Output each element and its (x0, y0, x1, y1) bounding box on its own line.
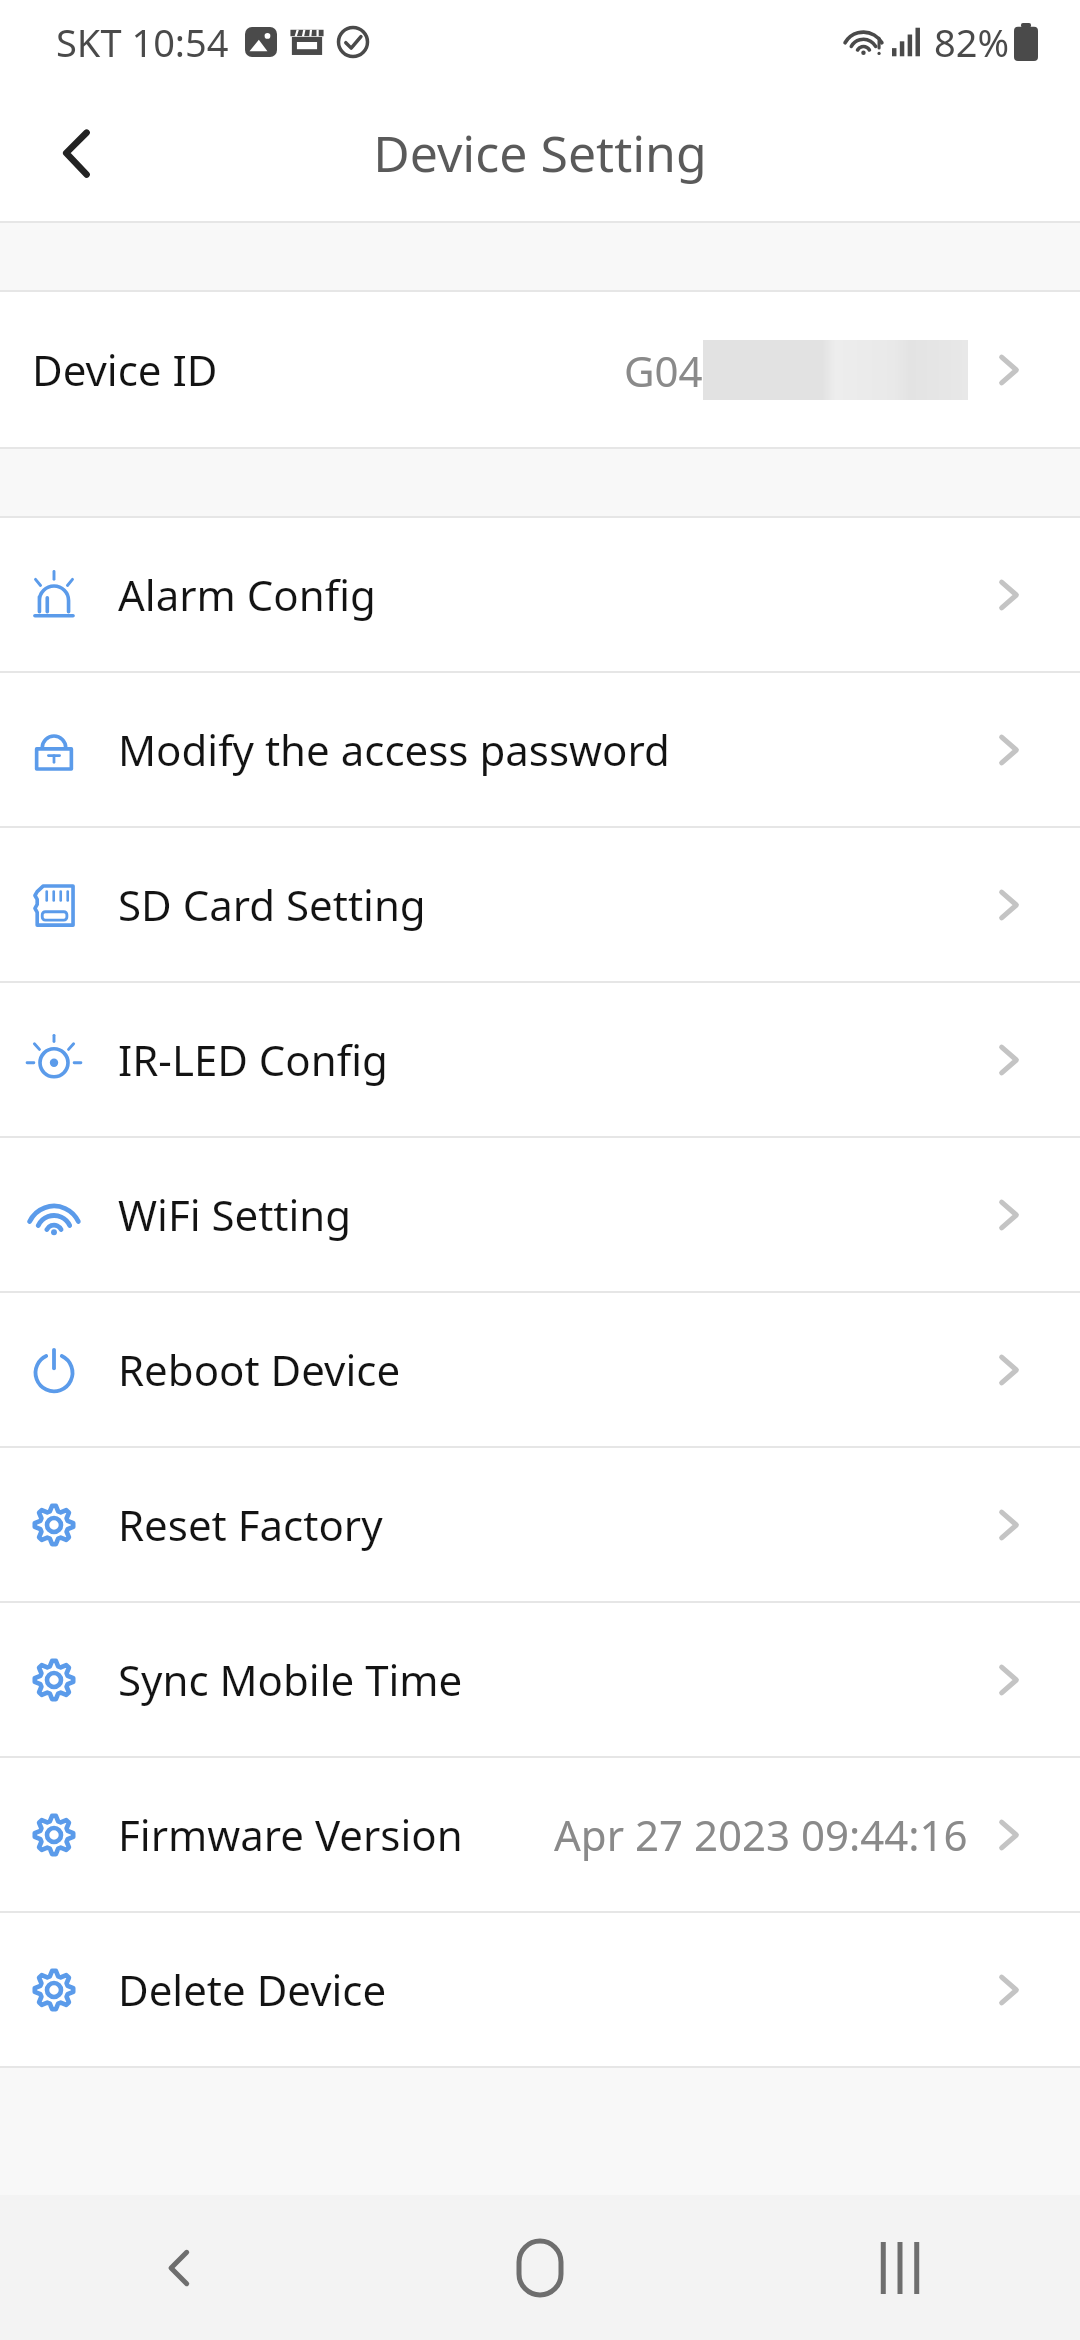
staticText: Device ID (32, 341, 218, 398)
staticText: Apr 27 2023 09:44:16 (554, 1806, 968, 1863)
button[interactable]: Device ID (0, 292, 1080, 447)
button[interactable]: Reset Factory (0, 1448, 1080, 1601)
staticText: Firmware Version (118, 1806, 463, 1863)
staticText: IR-LED Config (118, 1031, 388, 1088)
staticText: 82% (934, 16, 1010, 68)
button[interactable]: IR-LED Config (0, 983, 1080, 1136)
staticText: G04 (624, 342, 703, 399)
button[interactable]: Back (22, 98, 132, 208)
staticText: Reset Factory (118, 1496, 383, 1553)
staticText: Device Setting (373, 119, 707, 187)
staticText: WiFi Setting (118, 1186, 352, 1243)
button[interactable]: SD Card Setting (0, 828, 1080, 981)
button[interactable]: Back (0, 2195, 360, 2340)
staticText: Alarm Config (118, 566, 376, 623)
staticText: SD Card Setting (118, 876, 426, 933)
button[interactable]: WiFi Setting (0, 1138, 1080, 1291)
button[interactable]: Modify the access password (0, 673, 1080, 826)
staticText: Sync Mobile Time (118, 1651, 463, 1708)
button[interactable]: Sync Mobile Time (0, 1603, 1080, 1756)
staticText: SKT 10:54 (56, 16, 229, 68)
staticText: Modify the access password (118, 721, 670, 778)
button[interactable]: Firmware Version (0, 1758, 1080, 1911)
button[interactable]: Recent apps (720, 2195, 1080, 2340)
staticText: Reboot Device (118, 1341, 401, 1398)
button[interactable]: Alarm Config (0, 518, 1080, 671)
staticText: Delete Device (118, 1961, 387, 2018)
button[interactable]: Delete Device (0, 1913, 1080, 2066)
button[interactable]: Home (360, 2195, 720, 2340)
button[interactable]: Reboot Device (0, 1293, 1080, 1446)
